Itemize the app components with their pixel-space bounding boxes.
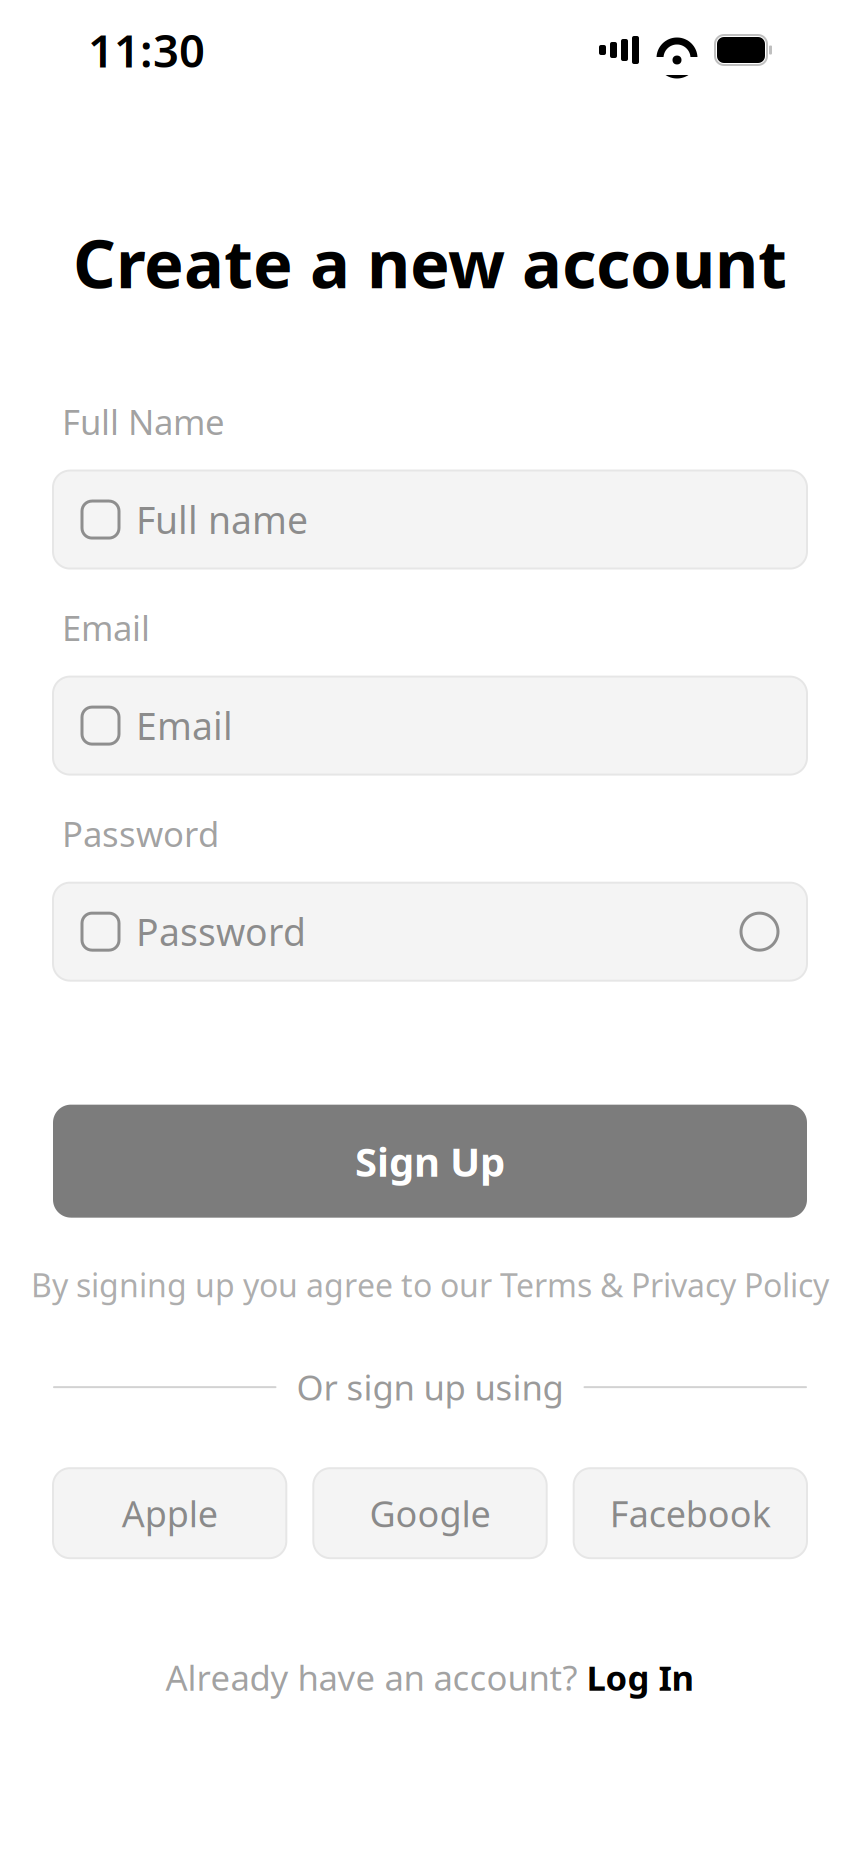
staticText: Password <box>136 907 306 956</box>
button[interactable]: Password <box>53 883 807 981</box>
button[interactable]: Facebook <box>574 1468 807 1558</box>
staticText: 11:30 <box>88 20 205 80</box>
staticText: Google <box>369 1489 490 1537</box>
staticText: Log In <box>586 1654 694 1700</box>
staticText: Create a new account <box>73 218 787 306</box>
button[interactable]: Email <box>53 677 807 775</box>
staticText: Password <box>62 811 219 857</box>
staticText: Full Name <box>62 398 225 444</box>
button[interactable]: Already have an account? <box>153 1646 706 1708</box>
staticText: Apple <box>122 1489 218 1537</box>
staticText: Email <box>136 701 233 750</box>
staticText: Sign Up <box>355 1135 505 1188</box>
staticText: Or sign up using <box>296 1364 563 1410</box>
button[interactable]: Sign Up <box>53 1105 807 1218</box>
staticText: Email <box>62 605 150 651</box>
staticText: Already have an account? <box>165 1654 586 1700</box>
button[interactable]: Full name <box>53 471 807 569</box>
staticText: Facebook <box>610 1489 771 1537</box>
staticText: By signing up you agree to our Terms & P… <box>31 1264 829 1306</box>
button[interactable]: Apple <box>53 1468 286 1558</box>
staticText: Full name <box>136 495 308 544</box>
button[interactable]: Google <box>313 1468 547 1558</box>
